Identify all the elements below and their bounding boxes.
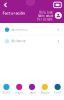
staticText: Perfil (54, 91, 62, 94)
button[interactable]: Inicio (0, 84, 13, 94)
staticText: Pagos (15, 91, 23, 94)
staticText: Mis facturas (11, 39, 25, 43)
staticText: Facturación (3, 10, 26, 16)
button[interactable]: Cards (52, 0, 62, 9)
button[interactable]: Ayuda (38, 84, 51, 94)
staticText: Ayuda (41, 91, 49, 94)
staticText: Ver detalle (37, 18, 53, 21)
button[interactable]: Perfil (51, 84, 64, 94)
staticText: Mis servicios (11, 28, 27, 31)
staticText: Saldo actual (38, 14, 53, 18)
button[interactable]: Mis servicios (0, 24, 64, 35)
staticText: Datos (28, 91, 35, 94)
staticText: Inicio (2, 91, 10, 94)
button[interactable]: Pagos (13, 84, 26, 94)
button[interactable]: Back (0, 0, 10, 9)
button[interactable]: Mis facturas (0, 36, 64, 47)
staticText: Hola, Juan (39, 11, 53, 14)
button[interactable]: Datos (26, 84, 38, 94)
